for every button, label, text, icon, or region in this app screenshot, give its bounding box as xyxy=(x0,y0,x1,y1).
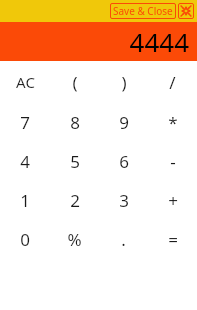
button[interactable]: . xyxy=(99,220,148,259)
button[interactable]: 5 xyxy=(50,142,99,181)
button[interactable]: ( xyxy=(50,61,99,103)
staticText: 2 xyxy=(70,189,80,212)
button[interactable]: % xyxy=(50,220,99,259)
button[interactable]: 0 xyxy=(0,220,50,259)
staticText: . xyxy=(121,228,126,251)
button[interactable]: = xyxy=(148,220,197,259)
button[interactable]: ) xyxy=(99,61,148,103)
staticText: AC xyxy=(16,72,35,92)
staticText: 4 xyxy=(20,150,30,173)
button[interactable]: 9 xyxy=(99,103,148,142)
staticText: * xyxy=(168,111,178,134)
button[interactable]: 7 xyxy=(0,103,50,142)
button[interactable]: Save & Close xyxy=(110,3,176,19)
button[interactable]: 3 xyxy=(99,181,148,220)
staticText: ( xyxy=(72,71,78,94)
staticText: + xyxy=(168,189,178,212)
staticText: / xyxy=(169,71,176,94)
button[interactable]: + xyxy=(148,181,197,220)
staticText: % xyxy=(67,228,82,251)
button[interactable]: 6 xyxy=(99,142,148,181)
staticText: 1 xyxy=(20,189,30,212)
button[interactable]: * xyxy=(148,103,197,142)
button[interactable]: Collapse xyxy=(178,3,194,19)
staticText: 3 xyxy=(119,189,129,212)
staticText: = xyxy=(168,228,178,251)
button[interactable]: 8 xyxy=(50,103,99,142)
staticText: 4444 xyxy=(129,24,189,59)
button[interactable]: 1 xyxy=(0,181,50,220)
staticText: - xyxy=(170,150,176,173)
button[interactable]: / xyxy=(148,61,197,103)
staticText: 8 xyxy=(70,111,80,134)
staticText: 9 xyxy=(119,111,129,134)
staticText: 5 xyxy=(70,150,80,173)
button[interactable]: AC xyxy=(0,61,50,103)
staticText: 6 xyxy=(119,150,129,173)
button[interactable]: 2 xyxy=(50,181,99,220)
button[interactable]: - xyxy=(148,142,197,181)
staticText: 0 xyxy=(20,228,30,251)
staticText: ) xyxy=(121,71,127,94)
staticText: 7 xyxy=(20,111,30,134)
staticText: Save & Close xyxy=(113,4,173,18)
button[interactable]: 4 xyxy=(0,142,50,181)
